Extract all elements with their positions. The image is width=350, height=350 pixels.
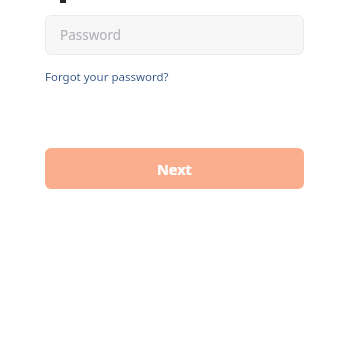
button[interactable]: Password — [45, 15, 304, 55]
staticText: Forgot your password? — [45, 69, 169, 85]
button[interactable]: Next — [45, 148, 304, 189]
staticText: Next — [157, 159, 192, 179]
button[interactable]: Forgot your password? — [45, 69, 169, 85]
staticText: Password — [60, 26, 122, 44]
